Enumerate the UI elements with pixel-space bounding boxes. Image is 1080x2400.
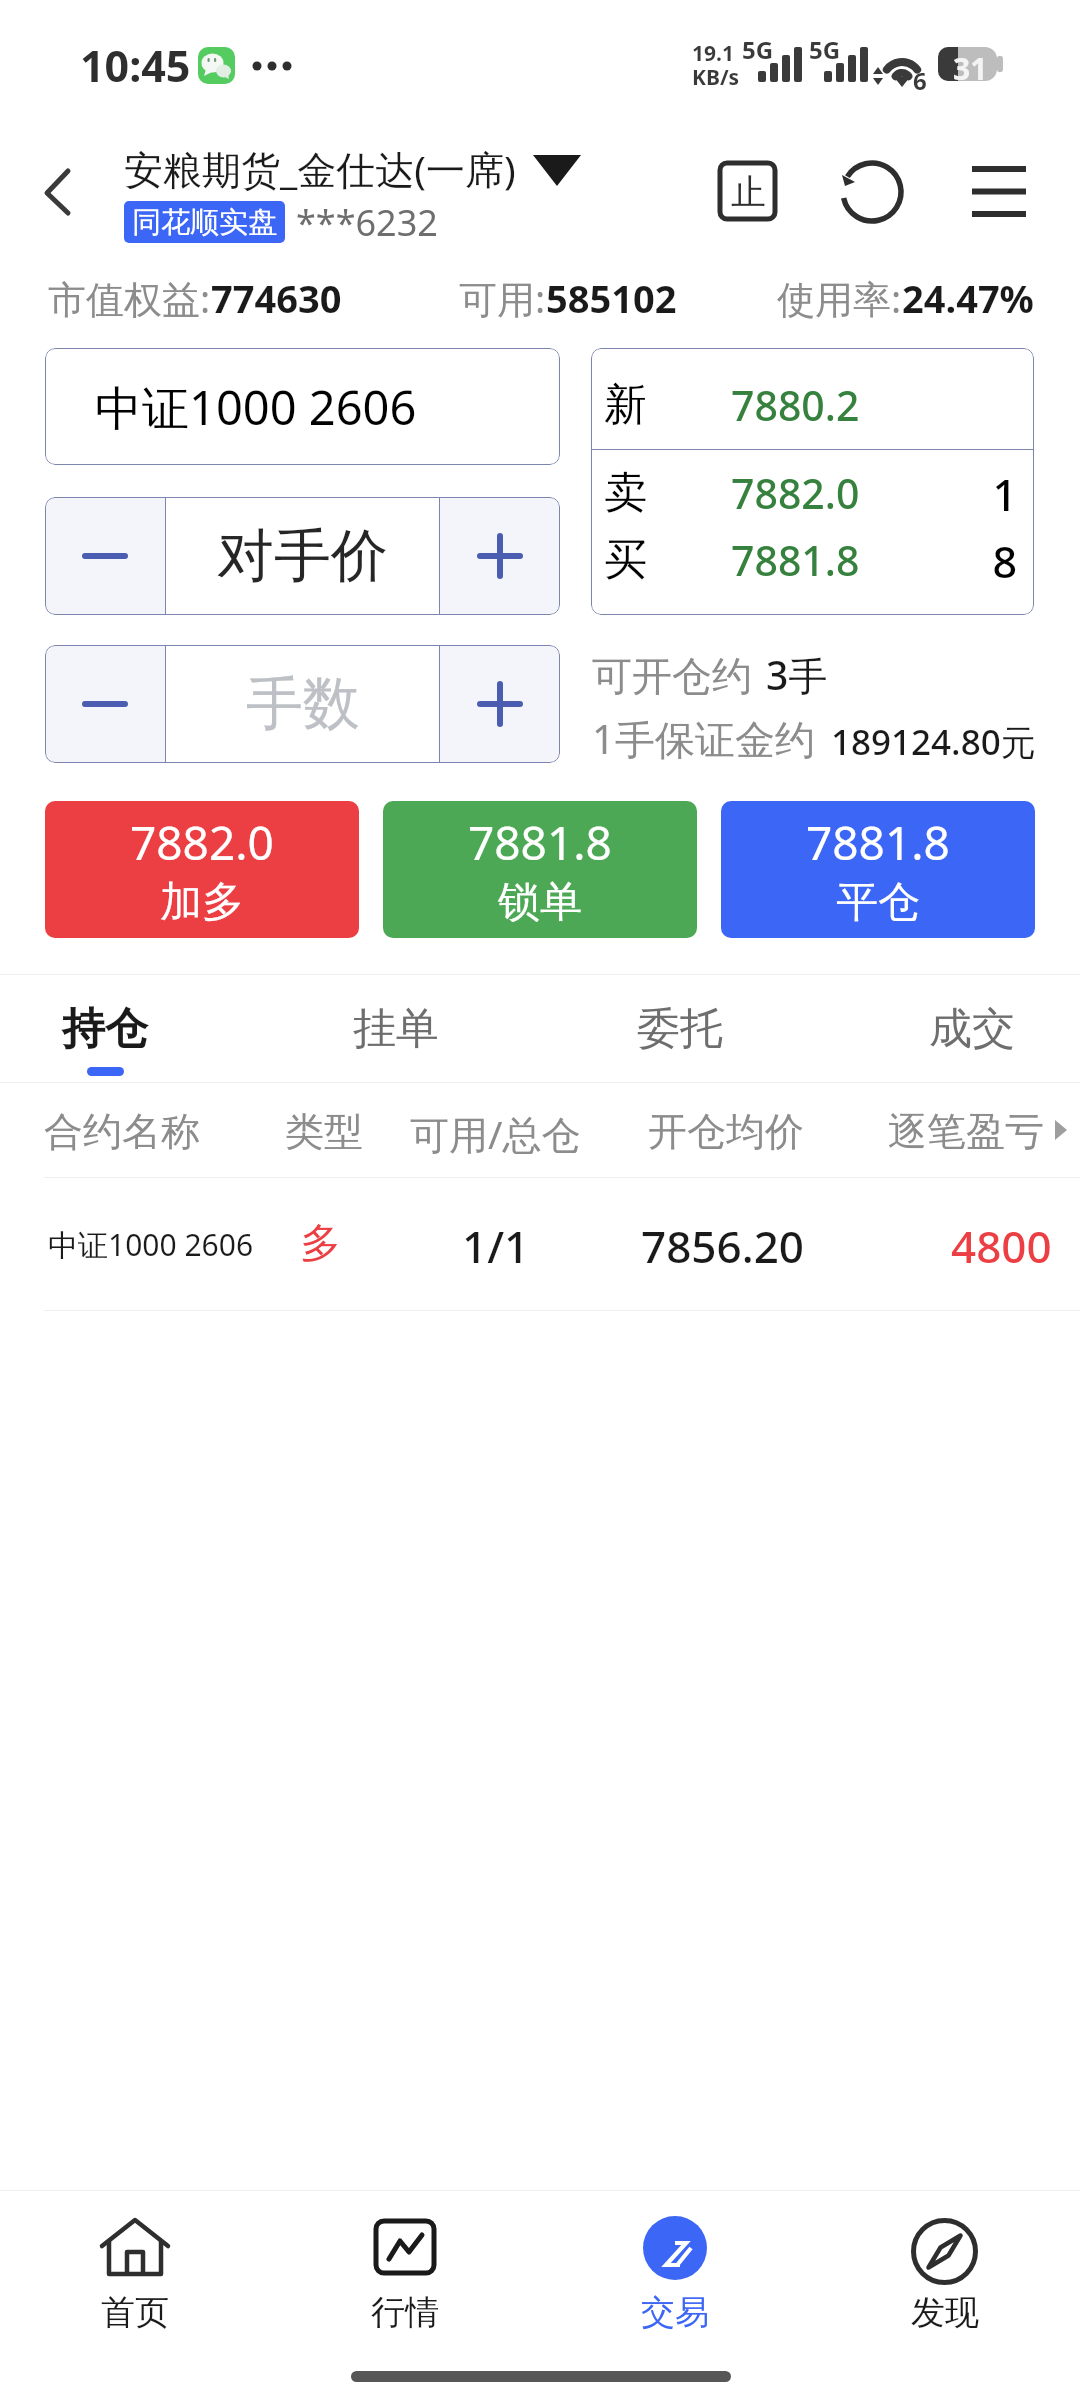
button[interactable]: Stop loss	[707, 151, 787, 231]
staticText: 7881.8	[731, 532, 860, 588]
staticText: 1/1	[462, 1216, 530, 1276]
staticText: 1	[992, 465, 1017, 524]
staticText: 合约名称	[44, 1107, 200, 1156]
staticText: 交易	[641, 2291, 709, 2334]
button[interactable]: Increase 对手价	[440, 497, 560, 615]
staticText: 类型	[285, 1107, 363, 1156]
staticText: 6	[913, 64, 927, 97]
button[interactable]	[0, 1177, 1080, 1310]
button[interactable]: Switch account	[120, 136, 590, 196]
staticText: 31	[953, 48, 988, 89]
staticText: 同花顺实盘	[132, 204, 277, 241]
button[interactable]: Menu	[959, 151, 1039, 231]
staticText: 5G	[742, 33, 774, 66]
button[interactable]: 成交	[882, 975, 1062, 1082]
staticText: 开仓均价	[648, 1107, 804, 1156]
staticText: 多	[300, 1218, 341, 1270]
staticText: 774630	[211, 272, 342, 324]
staticText: 买	[604, 533, 647, 587]
staticText: 中证1000 2606	[48, 1224, 254, 1265]
staticText: 19.1	[692, 39, 734, 68]
staticText: 发现	[911, 2291, 979, 2334]
staticText: 1手保证金约	[592, 711, 815, 766]
button[interactable]: Decrease 手数	[45, 645, 165, 763]
button[interactable]: Decrease 对手价	[45, 497, 165, 615]
staticText: 安粮期货_金仕达(一席)	[124, 142, 516, 195]
staticText: 585102	[546, 272, 677, 324]
staticText: 24.47%	[902, 272, 1034, 324]
button[interactable]: 7881.8	[721, 801, 1035, 938]
staticText: 可用/总仓	[410, 1107, 581, 1160]
staticText: 首页	[101, 2291, 169, 2334]
button[interactable]: 对手价	[166, 497, 439, 615]
staticText: 10:45	[80, 36, 191, 95]
staticText: 可开仓约	[592, 651, 752, 701]
staticText: 可用:	[459, 272, 546, 324]
staticText: KB/s	[692, 63, 740, 92]
staticText: 对手价	[217, 520, 388, 592]
staticText: 7882.0	[731, 465, 860, 521]
staticText: 卖	[604, 466, 647, 520]
staticText: 189124.80元	[831, 718, 1036, 766]
button[interactable]: Back	[16, 153, 96, 233]
staticText: 4800	[951, 1216, 1052, 1276]
staticText: 7881.8	[468, 811, 612, 874]
button[interactable]: 行情	[270, 2191, 540, 2346]
staticText: 手数	[246, 668, 360, 740]
button[interactable]: 中证1000 2606	[45, 348, 560, 465]
staticText: 持仓	[62, 1002, 148, 1056]
staticText: 7880.2	[731, 377, 860, 433]
button[interactable]: 发现	[810, 2191, 1080, 2346]
staticText: 新	[604, 378, 647, 432]
staticText: 7856.20	[641, 1216, 804, 1276]
staticText: ***6232	[296, 198, 438, 247]
button[interactable]: 7882.0	[45, 801, 359, 938]
staticText: 平仓	[836, 876, 920, 929]
staticText: 使用率:	[777, 272, 902, 324]
staticText: 止	[731, 170, 766, 214]
staticText: 5G	[809, 33, 841, 66]
staticText: 委托	[637, 1002, 723, 1056]
button[interactable]: 手数	[166, 645, 439, 763]
button[interactable]: 挂单	[306, 975, 486, 1082]
staticText: 8	[992, 532, 1017, 591]
button[interactable]: 首页	[0, 2191, 270, 2346]
button[interactable]: 7881.8	[383, 801, 697, 938]
staticText: 挂单	[353, 1002, 439, 1056]
staticText: 锁单	[498, 876, 582, 929]
staticText: 7882.0	[130, 811, 274, 874]
staticText: 3手	[766, 648, 828, 701]
staticText: 7881.8	[806, 811, 950, 874]
button[interactable]: 交易	[540, 2191, 810, 2346]
staticText: 逐笔盈亏	[888, 1107, 1044, 1156]
staticText: 市值权益:	[48, 272, 211, 324]
button[interactable]: 委托	[590, 975, 770, 1082]
staticText: 中证1000 2606	[95, 375, 417, 439]
staticText: 行情	[371, 2291, 439, 2334]
button[interactable]: Increase 手数	[440, 645, 560, 763]
staticText: 成交	[929, 1002, 1015, 1056]
button[interactable]: 持仓	[15, 975, 195, 1082]
staticText: 加多	[160, 876, 244, 929]
button[interactable]: Refresh	[832, 152, 912, 232]
